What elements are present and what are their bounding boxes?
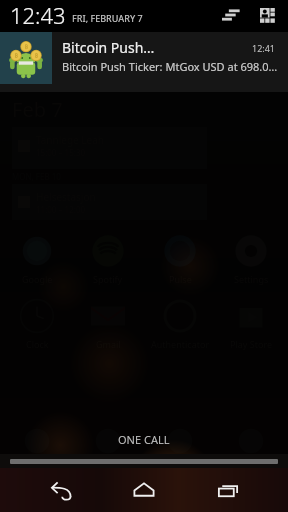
button[interactable] [146,422,214,460]
button[interactable]: Home [121,468,167,512]
button[interactable]: Bitcoin Push Ticker [0,32,288,92]
button[interactable]: Recent apps [205,468,251,512]
staticText: Bitcoin Push Ticker: MtGox USD at 698.00… [62,59,282,74]
staticText: 12:43 [10,0,66,30]
staticText: 12:41 [252,42,276,54]
button[interactable] [74,422,142,460]
button[interactable]: Quick settings [254,2,280,28]
button[interactable] [3,422,71,460]
staticText: FRI, FEBRUARY 7 [72,12,143,24]
button[interactable] [217,422,285,460]
button[interactable]: ONE CALL [118,432,170,447]
button[interactable]: Back [38,468,84,512]
button[interactable]: Pulse [146,232,214,285]
button[interactable]: Data usage [218,2,244,28]
staticText: Bitcoin Push Ticker [62,38,157,57]
